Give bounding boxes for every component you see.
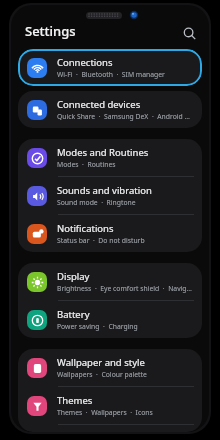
staticText: Sounds and vibration xyxy=(57,184,152,197)
staticText: Display xyxy=(57,270,90,283)
staticText: Modes and Routines xyxy=(57,146,149,159)
staticText: Notifications xyxy=(57,222,114,235)
staticText: Themes xyxy=(57,394,93,407)
button[interactable]: Display xyxy=(18,263,202,300)
staticText: Connected devices xyxy=(57,98,141,111)
button[interactable]: Sounds and vibration xyxy=(18,177,202,214)
staticText: Wi-Fi · Bluetooth · SIM manager xyxy=(57,70,165,79)
staticText: Status bar · Do not disturb xyxy=(57,236,145,245)
button[interactable]: Battery xyxy=(18,301,202,338)
staticText: Wallpapers · Colour palette xyxy=(57,370,147,379)
button[interactable]: Connections xyxy=(18,49,202,86)
staticText: Settings xyxy=(25,22,76,40)
staticText: Wallpaper and style xyxy=(57,356,145,369)
staticText: Modes · Routines xyxy=(57,160,116,169)
button[interactable]: Themes xyxy=(18,387,202,424)
button[interactable]: Wallpaper and style xyxy=(18,349,202,386)
staticText: Connections xyxy=(57,56,113,69)
button[interactable]: Search xyxy=(178,22,200,44)
staticText: Power saving · Charging xyxy=(57,322,138,331)
staticText: Quick Share · Samsung DeX · Android Auto xyxy=(57,112,193,121)
button[interactable]: Modes and Routines xyxy=(18,139,202,176)
staticText: Sound mode · Ringtone xyxy=(57,198,136,207)
button[interactable]: Notifications xyxy=(18,215,202,252)
button[interactable]: Connected devices xyxy=(18,91,202,128)
staticText: Themes · Wallpapers · Icons xyxy=(57,408,153,417)
staticText: Battery xyxy=(57,308,90,321)
staticText: Brightness · Eye comfort shield · Naviga… xyxy=(57,284,193,293)
button[interactable]: Home screen xyxy=(18,425,202,432)
